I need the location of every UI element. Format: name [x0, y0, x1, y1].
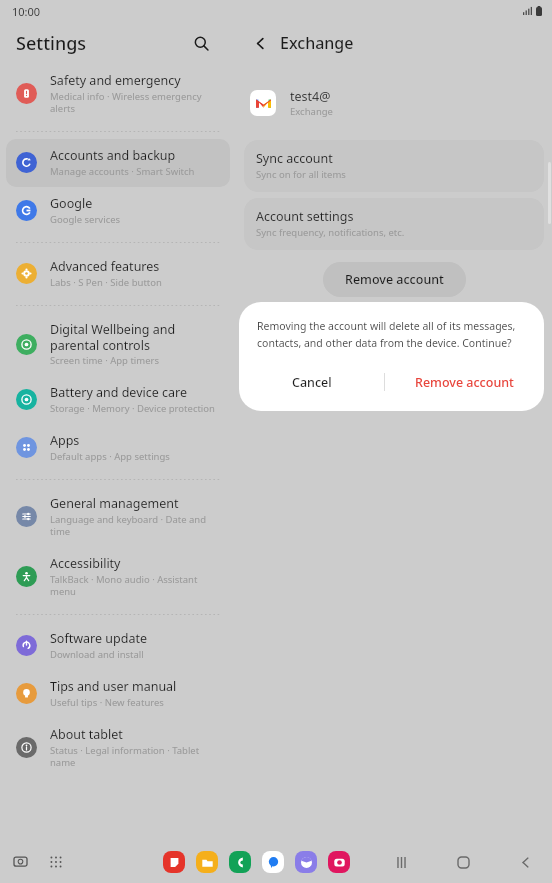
staticText: Removing the account will delete all of …	[257, 319, 526, 350]
button[interactable]: Internet	[295, 851, 317, 873]
button[interactable]: General management	[6, 487, 230, 547]
button[interactable]: Google	[6, 187, 230, 235]
staticText: test4@	[290, 88, 331, 105]
staticText: Tips and user manual	[50, 678, 177, 695]
button[interactable]: Search	[186, 28, 216, 58]
staticText: Apps	[50, 432, 80, 449]
staticText: Exchange	[280, 32, 354, 54]
button[interactable]: Home	[450, 849, 476, 875]
staticText: Advanced features	[50, 258, 160, 275]
staticText: Accessibility	[50, 555, 121, 572]
button[interactable]: Camera	[328, 851, 350, 873]
button[interactable]: About tablet	[6, 718, 230, 778]
staticText: Labs · S Pen · Side button	[50, 276, 162, 289]
button[interactable]: Sync account	[244, 140, 544, 192]
staticText: Language and keyboard · Date and time	[50, 513, 222, 538]
button[interactable]: Accounts and backup	[6, 139, 230, 187]
button[interactable]: All apps	[44, 850, 68, 874]
staticText: Remove account	[345, 271, 444, 288]
staticText: Cancel	[292, 374, 332, 391]
staticText: Google	[50, 195, 93, 212]
button[interactable]: Tips and user manual	[6, 670, 230, 718]
button[interactable]: Apps	[6, 424, 230, 472]
staticText: Medical info · Wireless emergency alerts	[50, 90, 222, 115]
staticText: Sync on for all items	[256, 168, 346, 181]
staticText: General management	[50, 495, 179, 512]
staticText: Exchange	[290, 105, 333, 118]
button[interactable]: My Files	[196, 851, 218, 873]
staticText: Download and install	[50, 648, 144, 661]
button[interactable]: Safety and emergency	[6, 64, 230, 124]
button[interactable]: Back	[246, 29, 274, 57]
staticText: Sync frequency, notifications, etc.	[256, 226, 405, 239]
button[interactable]: Digital Wellbeing and parental controls	[6, 313, 230, 376]
staticText: Storage · Memory · Device protection	[50, 402, 215, 415]
button[interactable]: Remove account	[385, 363, 544, 401]
button[interactable]: Recents	[388, 849, 414, 875]
staticText: Sync account	[256, 150, 333, 167]
button[interactable]: Remove account	[323, 262, 466, 297]
button[interactable]: Advanced features	[6, 250, 230, 298]
staticText: Accounts and backup	[50, 147, 176, 164]
staticText: Screen time · App timers	[50, 354, 159, 367]
button[interactable]: Back	[512, 849, 538, 875]
staticText: Remove account	[415, 374, 514, 391]
button[interactable]: Battery and device care	[6, 376, 230, 424]
staticText: Software update	[50, 630, 147, 647]
button[interactable]: Cancel	[239, 363, 384, 401]
staticText: Google services	[50, 213, 121, 226]
staticText: Safety and emergency	[50, 72, 181, 89]
button[interactable]: Recent apps panel	[8, 850, 32, 874]
staticText: Account settings	[256, 208, 354, 225]
button[interactable]: Account settings	[244, 198, 544, 250]
staticText: TalkBack · Mono audio · Assistant menu	[50, 573, 222, 598]
button[interactable]: test4@	[236, 86, 552, 120]
staticText: Manage accounts · Smart Switch	[50, 165, 195, 178]
staticText: Useful tips · New features	[50, 696, 164, 709]
button[interactable]: Samsung Notes	[163, 851, 185, 873]
button[interactable]: Accessibility	[6, 547, 230, 607]
button[interactable]: Phone	[229, 851, 251, 873]
staticText: 10:00	[12, 4, 41, 19]
button[interactable]: Messages	[262, 851, 284, 873]
staticText: About tablet	[50, 726, 123, 743]
staticText: Battery and device care	[50, 384, 188, 401]
button[interactable]: Software update	[6, 622, 230, 670]
staticText: Default apps · App settings	[50, 450, 170, 463]
staticText: Settings	[16, 31, 87, 56]
staticText: Digital Wellbeing and parental controls	[50, 321, 222, 353]
staticText: Status · Legal information · Tablet name	[50, 744, 222, 769]
